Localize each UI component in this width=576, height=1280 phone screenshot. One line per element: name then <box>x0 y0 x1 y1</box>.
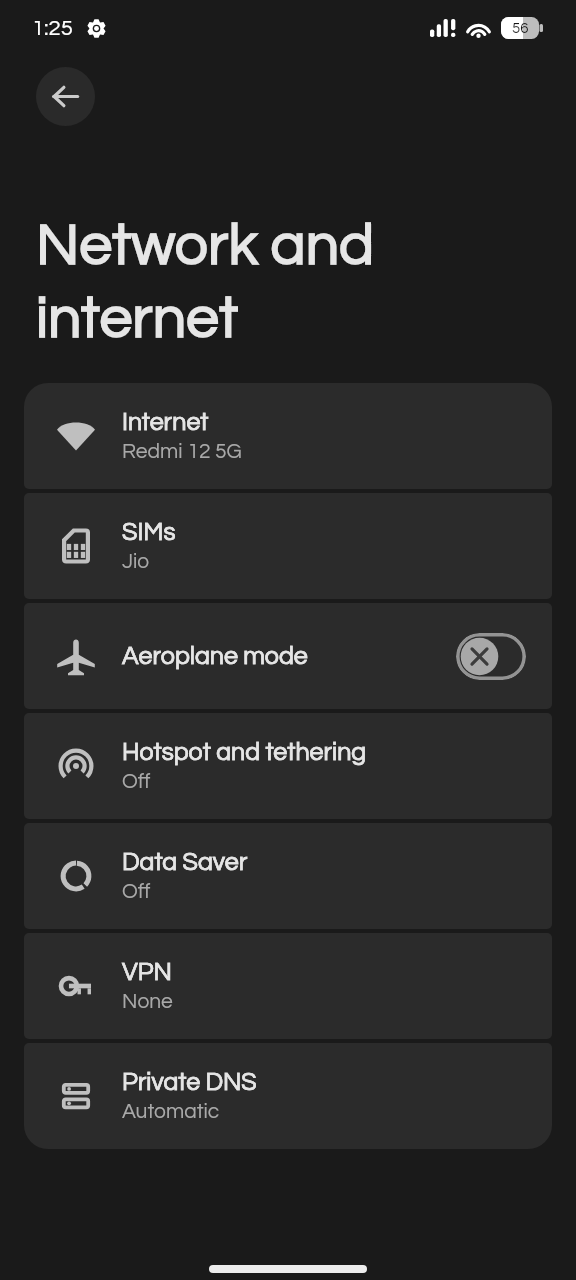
staticText: Off <box>122 881 151 903</box>
button[interactable]: Hotspot and tethering <box>24 713 552 819</box>
staticText: Aeroplane mode <box>122 643 308 669</box>
staticText: None <box>122 991 173 1013</box>
staticText: Hotspot and tethering <box>122 739 367 765</box>
button[interactable]: Private DNS <box>24 1043 552 1149</box>
staticText: Jio <box>122 551 150 573</box>
staticText: Automatic <box>122 1101 220 1123</box>
staticText: Internet <box>122 409 209 435</box>
staticText: SIMs <box>122 519 176 545</box>
staticText: Data Saver <box>122 849 248 875</box>
staticText: Redmi 12 5G <box>122 441 242 463</box>
staticText: internet <box>36 289 239 350</box>
staticText: Hotspot and tethering <box>122 739 367 765</box>
staticText: internet <box>36 289 239 350</box>
staticText: Internet <box>122 409 209 435</box>
staticText: Off <box>122 771 151 793</box>
staticText: Data Saver <box>122 849 248 875</box>
staticText: Private DNS <box>122 1069 257 1095</box>
button[interactable]: VPN <box>24 933 552 1039</box>
button[interactable]: SIMs <box>24 493 552 599</box>
button[interactable]: Data Saver <box>24 823 552 929</box>
staticText: 1:25 <box>32 17 73 40</box>
staticText: VPN <box>122 959 172 985</box>
staticText: Network and <box>36 216 375 277</box>
staticText: Network and <box>36 216 375 277</box>
button[interactable]: Internet <box>24 383 552 489</box>
staticText: SIMs <box>122 519 176 545</box>
button[interactable]: Aeroplane mode toggle, off <box>456 633 526 680</box>
button[interactable]: Back <box>36 67 95 126</box>
staticText: Aeroplane mode <box>122 643 308 669</box>
staticText: VPN <box>122 959 172 985</box>
staticText: 56 <box>512 21 529 36</box>
button[interactable]: Aeroplane mode <box>24 603 552 709</box>
staticText: Private DNS <box>122 1069 257 1095</box>
